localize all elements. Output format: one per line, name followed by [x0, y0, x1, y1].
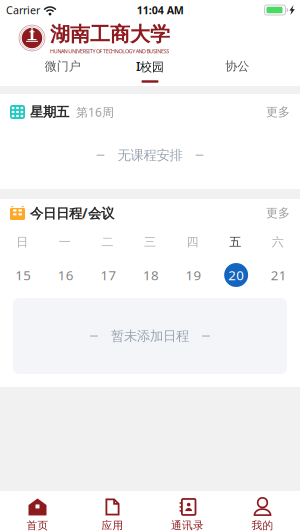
button[interactable]: 更多: [266, 105, 290, 119]
staticText: 五: [229, 235, 241, 249]
button[interactable]: 首页: [0, 492, 75, 532]
staticText: 我的: [251, 519, 273, 532]
staticText: 湖南工商大学: [50, 22, 170, 47]
staticText: 二: [101, 235, 113, 249]
button[interactable]: I校园: [106, 56, 194, 86]
staticText: 18: [143, 266, 159, 284]
staticText: 星期五: [30, 104, 69, 120]
staticText: 六: [272, 235, 284, 249]
staticText: 微门户: [45, 59, 81, 74]
staticText: 四: [187, 235, 199, 249]
staticText: 三: [144, 235, 156, 249]
staticText: 11:04 AM: [137, 3, 184, 17]
staticText: 21: [271, 266, 287, 284]
button[interactable]: 微门户: [19, 56, 106, 86]
button[interactable]: 通讯录: [150, 492, 225, 532]
staticText: HUNAN UNIVERSITY OF TECHNOLOGY AND BUSIN…: [50, 48, 169, 55]
button[interactable]: 协公: [194, 56, 281, 86]
staticText: 暂未添加日程: [111, 328, 189, 344]
button[interactable]: 我的: [225, 492, 300, 532]
staticText: 第16周: [76, 104, 114, 120]
staticText: Carrier: [6, 3, 40, 17]
staticText: 一: [59, 235, 71, 249]
staticText: 协公: [225, 59, 249, 74]
staticText: 首页: [26, 519, 48, 532]
staticText: 应用: [101, 519, 123, 532]
staticText: 15: [15, 266, 31, 284]
staticText: 17: [100, 266, 116, 284]
staticText: I校园: [136, 58, 164, 74]
staticText: 更多: [266, 206, 290, 220]
staticText: 通讯录: [171, 519, 204, 532]
staticText: 今日日程/会议: [30, 204, 114, 222]
staticText: 无课程安排: [117, 147, 182, 163]
staticText: 20: [228, 266, 244, 284]
staticText: 日: [16, 235, 28, 249]
staticText: 16: [58, 266, 74, 284]
button[interactable]: 应用: [75, 492, 150, 532]
button[interactable]: 更多: [266, 206, 290, 220]
staticText: 19: [186, 266, 202, 284]
staticText: 更多: [266, 105, 290, 119]
